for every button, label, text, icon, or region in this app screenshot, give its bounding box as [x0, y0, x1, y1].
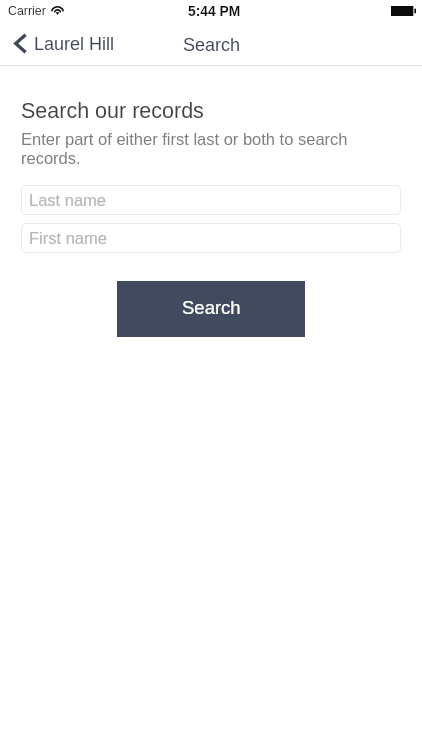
staticText: Search our records [21, 99, 204, 123]
button[interactable]: Search [117, 281, 305, 337]
button[interactable]: First name [21, 223, 401, 253]
staticText: Enter part of either first last or both … [21, 130, 351, 167]
staticText: Carrier [8, 4, 46, 18]
staticText: First name [29, 229, 107, 247]
staticText: 5:44 PM [188, 4, 241, 19]
button[interactable]: Last name [21, 185, 401, 215]
staticText: Last name [29, 191, 107, 209]
staticText: Search [182, 297, 241, 318]
staticText: Laurel Hill [34, 34, 115, 54]
button[interactable]: Back [0, 28, 127, 62]
other: Back [14, 33, 27, 54]
staticText: Search [183, 35, 241, 55]
